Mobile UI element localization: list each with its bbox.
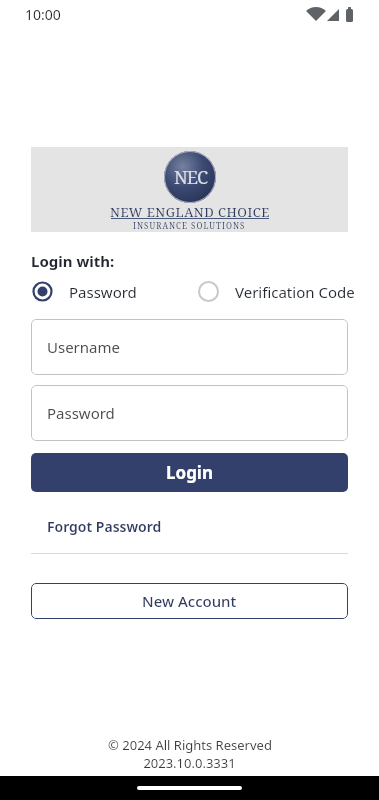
- button[interactable]: Username: [31, 319, 348, 375]
- staticText: INSURANCE SOLUTIONS: [133, 220, 246, 231]
- staticText: Password: [47, 403, 115, 423]
- staticText: © 2024 All Rights Reserved: [108, 736, 272, 754]
- button[interactable]: Password: [31, 385, 348, 441]
- staticText: Forgot Password: [47, 517, 162, 536]
- staticText: NEC: [174, 165, 207, 190]
- staticText: Verification Code: [235, 282, 355, 302]
- staticText: Username: [47, 337, 120, 357]
- staticText: 10:00: [25, 5, 61, 24]
- button[interactable]: Password: [32, 281, 137, 302]
- staticText: NEW ENGLAND CHOICE: [110, 203, 270, 218]
- staticText: 2023.10.0.3331: [143, 754, 236, 772]
- button[interactable]: Forgot Password: [47, 517, 162, 536]
- staticText: New Account: [142, 591, 237, 611]
- button[interactable]: New Account: [31, 583, 348, 619]
- staticText: Login: [166, 461, 214, 484]
- staticText: Password: [69, 282, 137, 302]
- button[interactable]: Login: [31, 453, 348, 492]
- button[interactable]: Verification Code: [198, 281, 355, 302]
- staticText: Login with:: [31, 251, 115, 271]
